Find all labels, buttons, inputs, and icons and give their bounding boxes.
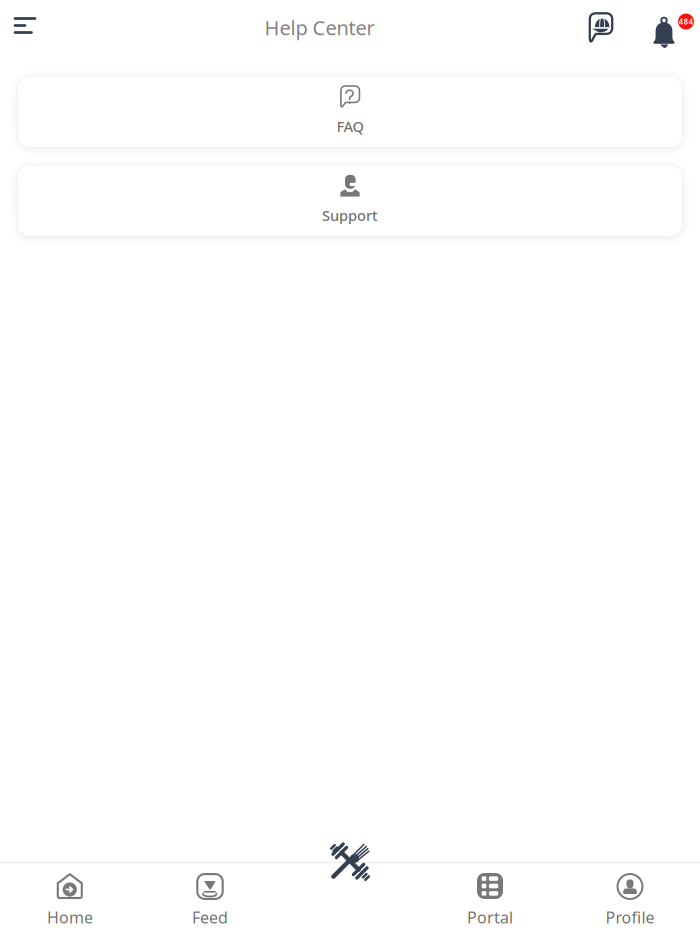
staticText: 484	[678, 16, 693, 27]
button[interactable]: Community	[562, 0, 640, 55]
staticText: Support	[322, 205, 378, 225]
button[interactable]: FAQ	[18, 77, 682, 147]
staticText: Help Center	[264, 14, 374, 41]
button[interactable]: Feed	[140, 863, 280, 934]
button[interactable]: Menu	[0, 0, 49, 55]
button[interactable]: Profile	[560, 863, 700, 934]
staticText: Feed	[192, 907, 228, 928]
staticText: FAQ	[336, 116, 363, 136]
button[interactable]: Notifications	[640, 0, 688, 55]
staticText: Profile	[605, 907, 654, 928]
button[interactable]: Support	[18, 166, 682, 236]
staticText: Home	[47, 907, 93, 928]
staticText: Portal	[467, 907, 513, 928]
button[interactable]: Home	[0, 863, 140, 934]
button[interactable]: Portal	[420, 863, 560, 934]
button[interactable]: Workouts and meals	[318, 835, 382, 887]
